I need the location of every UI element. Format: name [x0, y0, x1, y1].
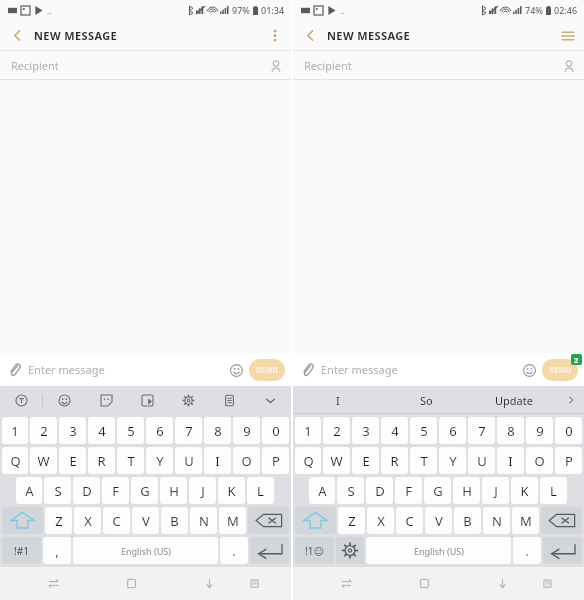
button[interactable]: I — [293, 386, 382, 414]
button[interactable]: Enter — [543, 537, 582, 564]
button[interactable]: Y — [439, 447, 466, 474]
button[interactable]: More options — [259, 20, 291, 51]
button[interactable]: Emoji — [223, 357, 249, 383]
button[interactable]: S — [337, 477, 364, 504]
button[interactable]: 2 — [30, 417, 57, 444]
button[interactable]: Collapse — [250, 386, 291, 414]
button[interactable]: 4 — [381, 417, 408, 444]
button[interactable]: Stickers — [85, 386, 127, 414]
button[interactable]: U — [175, 447, 202, 474]
button[interactable]: S — [44, 477, 71, 504]
button[interactable]: Menu — [552, 20, 584, 51]
button[interactable]: English (US) — [366, 537, 511, 564]
button[interactable]: 7 — [468, 417, 495, 444]
button[interactable]: Keyboard — [234, 567, 275, 600]
button[interactable]: N — [483, 507, 510, 534]
button[interactable]: 6 — [146, 417, 173, 444]
button[interactable]: Add recipient — [554, 51, 584, 80]
button[interactable]: SEND — [249, 359, 285, 381]
button[interactable]: L — [540, 477, 567, 504]
button[interactable]: Q — [2, 447, 28, 474]
button[interactable]: J — [482, 477, 509, 504]
button[interactable]: F — [102, 477, 129, 504]
button[interactable]: 1 — [2, 417, 28, 444]
button[interactable]: Emoji — [516, 357, 542, 383]
button[interactable]: 8 — [497, 417, 524, 444]
button[interactable]: !#1 — [2, 537, 41, 564]
button[interactable]: Y — [146, 447, 173, 474]
button[interactable]: N — [190, 507, 217, 534]
button[interactable]: K — [218, 477, 245, 504]
button[interactable]: English (US) — [73, 537, 218, 564]
button[interactable]: 6 — [439, 417, 466, 444]
button[interactable]: GIF — [127, 386, 168, 414]
button[interactable]: Recents — [326, 567, 367, 600]
button[interactable]: 8 — [204, 417, 231, 444]
button[interactable]: Recents — [33, 567, 74, 600]
button[interactable]: H — [160, 477, 187, 504]
button[interactable]: O — [233, 447, 260, 474]
button[interactable]: , — [43, 537, 71, 564]
button[interactable]: V — [132, 507, 159, 534]
button[interactable]: D — [366, 477, 393, 504]
button[interactable]: Attach — [0, 353, 28, 386]
button[interactable]: J — [189, 477, 216, 504]
button[interactable]: D — [73, 477, 100, 504]
button[interactable]: O — [526, 447, 553, 474]
button[interactable]: 5 — [117, 417, 144, 444]
button[interactable]: H — [453, 477, 480, 504]
button[interactable]: Z — [45, 507, 72, 534]
button[interactable]: . — [513, 537, 541, 564]
button[interactable]: Text mode — [0, 386, 42, 414]
button[interactable]: Add recipient — [261, 51, 291, 80]
button[interactable]: G — [424, 477, 451, 504]
button[interactable]: Backspace — [541, 507, 582, 534]
button[interactable]: . — [220, 537, 248, 564]
button[interactable]: U — [468, 447, 495, 474]
button[interactable]: P — [262, 447, 289, 474]
button[interactable]: Q — [295, 447, 321, 474]
button[interactable]: M — [219, 507, 246, 534]
button[interactable]: 2 — [323, 417, 350, 444]
button[interactable]: Backspace — [248, 507, 289, 534]
button[interactable]: Attach — [293, 353, 321, 386]
button[interactable]: X — [367, 507, 394, 534]
button[interactable]: L — [247, 477, 274, 504]
button[interactable]: R — [381, 447, 408, 474]
button[interactable]: Back — [0, 20, 34, 51]
button[interactable]: A — [309, 477, 335, 504]
button[interactable]: I — [204, 447, 231, 474]
button[interactable]: 3 — [59, 417, 86, 444]
button[interactable]: Clipboard — [209, 386, 250, 414]
button[interactable]: T — [410, 447, 437, 474]
button[interactable]: Back — [293, 20, 327, 51]
button[interactable]: Shift — [2, 507, 43, 534]
button[interactable]: Home — [404, 567, 445, 600]
button[interactable]: Emoji — [43, 386, 85, 414]
button[interactable]: R — [88, 447, 115, 474]
button[interactable]: Z — [338, 507, 365, 534]
button[interactable]: E — [352, 447, 379, 474]
button[interactable]: Update — [470, 386, 558, 414]
button[interactable]: Home — [111, 567, 152, 600]
button[interactable]: I — [497, 447, 524, 474]
button[interactable]: 1 — [295, 417, 321, 444]
button[interactable]: 9 — [526, 417, 553, 444]
button[interactable]: !1☺ — [295, 537, 334, 564]
button[interactable]: SEND — [542, 359, 578, 381]
button[interactable]: B — [161, 507, 188, 534]
button[interactable]: P — [555, 447, 582, 474]
button[interactable]: Hide keyboard — [189, 567, 230, 600]
button[interactable]: B — [454, 507, 481, 534]
button[interactable]: X — [74, 507, 101, 534]
button[interactable]: Settings — [168, 386, 209, 414]
button[interactable]: M — [512, 507, 539, 534]
button[interactable]: Keyboard — [527, 567, 568, 600]
button[interactable]: 7 — [175, 417, 202, 444]
button[interactable]: K — [511, 477, 538, 504]
button[interactable]: 4 — [88, 417, 115, 444]
button[interactable]: Enter — [250, 537, 289, 564]
button[interactable]: 3 — [352, 417, 379, 444]
button[interactable]: C — [103, 507, 130, 534]
button[interactable]: E — [59, 447, 86, 474]
